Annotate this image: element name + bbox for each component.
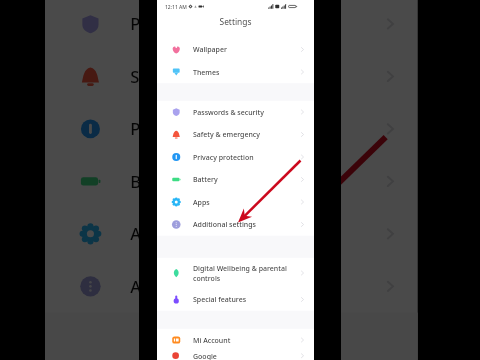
staticText: Safety & emergency [130, 65, 289, 87]
button[interactable]: Safety & emergency [45, 50, 418, 103]
button[interactable]: Passwords & security [157, 101, 314, 123]
staticText: Apps [193, 197, 210, 207]
button[interactable]: Wallpaper [157, 38, 314, 61]
button[interactable]: Safety & emergency [157, 123, 314, 146]
staticText: Additional settings [130, 275, 280, 297]
staticText: Privacy protection [193, 152, 254, 162]
staticText: Themes [193, 67, 219, 77]
staticText: Passwords & security [193, 107, 264, 117]
button[interactable]: Themes [157, 61, 314, 83]
button[interactable]: Additional settings [45, 260, 418, 313]
button[interactable]: Apps [45, 208, 418, 260]
staticText: Apps [130, 223, 170, 245]
button[interactable]: Battery [45, 155, 418, 208]
button[interactable]: Privacy protection [45, 103, 418, 155]
button[interactable]: Digital Wellbeing & parental [157, 258, 314, 288]
button[interactable]: Special features [157, 288, 314, 311]
staticText: Wallpaper [193, 45, 227, 54]
staticText: Digital Wellbeing & parental [193, 263, 287, 273]
button[interactable]: Passwords & security [45, 0, 418, 50]
button[interactable]: Additional settings [157, 213, 314, 236]
button[interactable]: Battery [157, 168, 314, 191]
button[interactable]: Apps [157, 191, 314, 213]
staticText: Battery [130, 170, 189, 192]
staticText: Google [193, 351, 217, 360]
staticText: 12:11 AM [165, 3, 187, 10]
staticText: Special features [193, 295, 246, 304]
staticText: Mi Account [193, 335, 230, 345]
button[interactable]: Mi Account [157, 329, 314, 351]
staticText: Safety & emergency [193, 130, 260, 139]
staticText: Passwords & security [130, 13, 299, 35]
button[interactable]: Privacy protection [157, 146, 314, 168]
staticText: Settings [219, 16, 251, 27]
button[interactable]: Google [157, 351, 314, 360]
staticText: Privacy protection [130, 118, 274, 140]
staticText: Additional settings [193, 220, 256, 229]
staticText: Battery [193, 175, 218, 184]
staticText: controls [193, 273, 220, 282]
